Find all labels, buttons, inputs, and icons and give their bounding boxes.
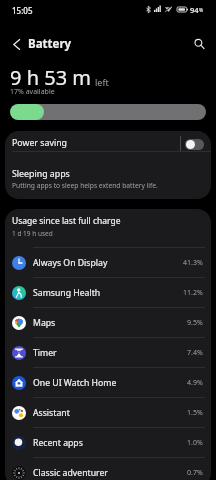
staticText: Battery	[28, 36, 72, 52]
staticText: 9 h 53 m	[10, 64, 91, 91]
staticText: %	[199, 7, 204, 14]
staticText: 41.3%	[183, 258, 203, 268]
staticText: Recent apps	[33, 437, 187, 449]
staticText: Power saving	[12, 137, 67, 149]
button[interactable]: One UI Watch Home	[5, 368, 211, 397]
staticText: Assistant	[33, 407, 187, 419]
button[interactable]: Always On Display	[5, 248, 211, 277]
staticText: Timer	[33, 347, 187, 359]
staticText: 9.5%	[187, 318, 203, 328]
staticText: Classic adventurer	[33, 467, 187, 479]
button[interactable]: Classic adventurer	[5, 458, 211, 480]
button[interactable]: Power saving	[5, 131, 211, 151]
button[interactable]: Maps	[5, 308, 211, 337]
button[interactable]: Timer	[5, 338, 211, 367]
button[interactable]: Recent apps	[5, 428, 211, 457]
button[interactable]: Search	[186, 31, 212, 57]
staticText: 94	[190, 5, 199, 15]
staticText: Usage since last full charge	[12, 215, 121, 227]
staticText: 11.2%	[183, 288, 203, 298]
staticText: 15:05	[12, 5, 33, 16]
button[interactable]: Samsung Health	[5, 278, 211, 307]
staticText: Samsung Health	[33, 287, 183, 299]
staticText: 1.0%	[187, 438, 203, 448]
button[interactable]: Sleeping apps	[5, 152, 211, 199]
staticText: left	[95, 76, 109, 88]
staticText: 1.5%	[187, 408, 203, 418]
staticText: Always On Display	[33, 257, 183, 269]
staticText: 0.7%	[187, 468, 203, 478]
staticText: 1 d 19 h used	[12, 229, 53, 238]
staticText: 4.9%	[187, 378, 203, 388]
staticText: One UI Watch Home	[33, 377, 187, 389]
staticText: Maps	[33, 317, 187, 329]
button[interactable]: Power saving toggle	[185, 139, 204, 150]
button[interactable]: Navigate up	[3, 31, 29, 57]
staticText: 17% available	[10, 87, 55, 97]
staticText: Sleeping apps	[12, 168, 70, 180]
staticText: Putting apps to sleep helps extend batte…	[12, 181, 158, 190]
staticText: 7.4%	[187, 348, 203, 358]
button[interactable]: Assistant	[5, 398, 211, 427]
